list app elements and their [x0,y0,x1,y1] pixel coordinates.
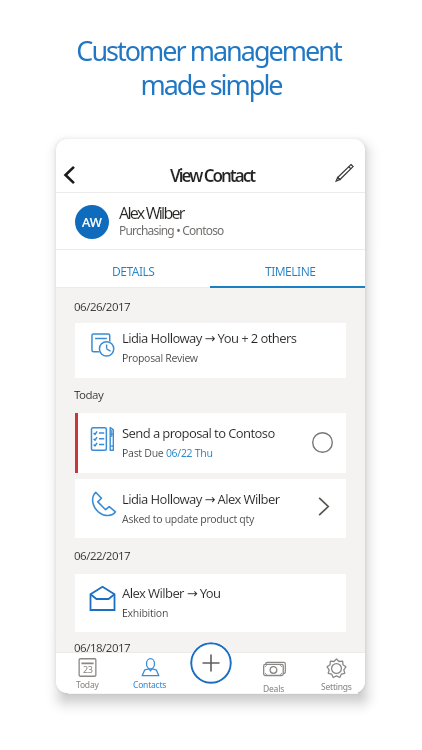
button[interactable]: Send a proposal to Contoso [75,413,346,473]
button[interactable]: Contacts [121,658,179,691]
staticText: Proposal Review [122,351,198,365]
staticText: Customer management [76,32,341,69]
staticText: Deals [263,683,285,693]
staticText: DETAILS [112,263,155,279]
staticText: TIMELINE [265,263,316,279]
staticText: made simple [140,66,282,103]
staticText: Today [74,387,104,403]
button[interactable]: Edit [327,139,365,193]
staticText: Asked to update product qty [122,512,255,526]
staticText: Exhibition [122,606,169,620]
staticText: Alex Wilber [119,202,184,224]
staticText: Lidia Holloway → Alex Wilber [122,490,280,508]
staticText: Alex Wilber → You [122,584,221,602]
button[interactable]: DETAILS [56,250,210,288]
staticText: Contacts [133,679,167,691]
staticText: AW [82,213,102,231]
staticText: 23 [83,663,93,675]
button[interactable]: TIMELINE [210,250,365,288]
staticText: 06/22/2017 [74,548,131,564]
button[interactable]: 23 [58,658,116,691]
button[interactable]: Alex Wilber → You [75,574,346,632]
staticText: Today [76,679,99,691]
button[interactable]: Back [56,139,92,193]
button[interactable]: Lidia Holloway → You + 2 others [75,323,346,378]
staticText: 06/26/2017 [74,299,131,315]
staticText: 06/18/2017 [74,640,131,652]
staticText: View Contact [170,164,255,187]
staticText: Send a proposal to Contoso [122,424,275,442]
button[interactable]: Settings [307,658,365,693]
staticText: Purchasing • Contoso [119,222,224,238]
button[interactable]: Lidia Holloway → Alex Wilber [75,479,346,538]
staticText: Lidia Holloway → You + 2 others [122,329,297,347]
staticText: Settings [321,681,352,693]
button[interactable]: Add [190,642,232,684]
button[interactable]: Deals [245,658,303,693]
staticText: Past Due 06/22 Thu [122,446,213,460]
